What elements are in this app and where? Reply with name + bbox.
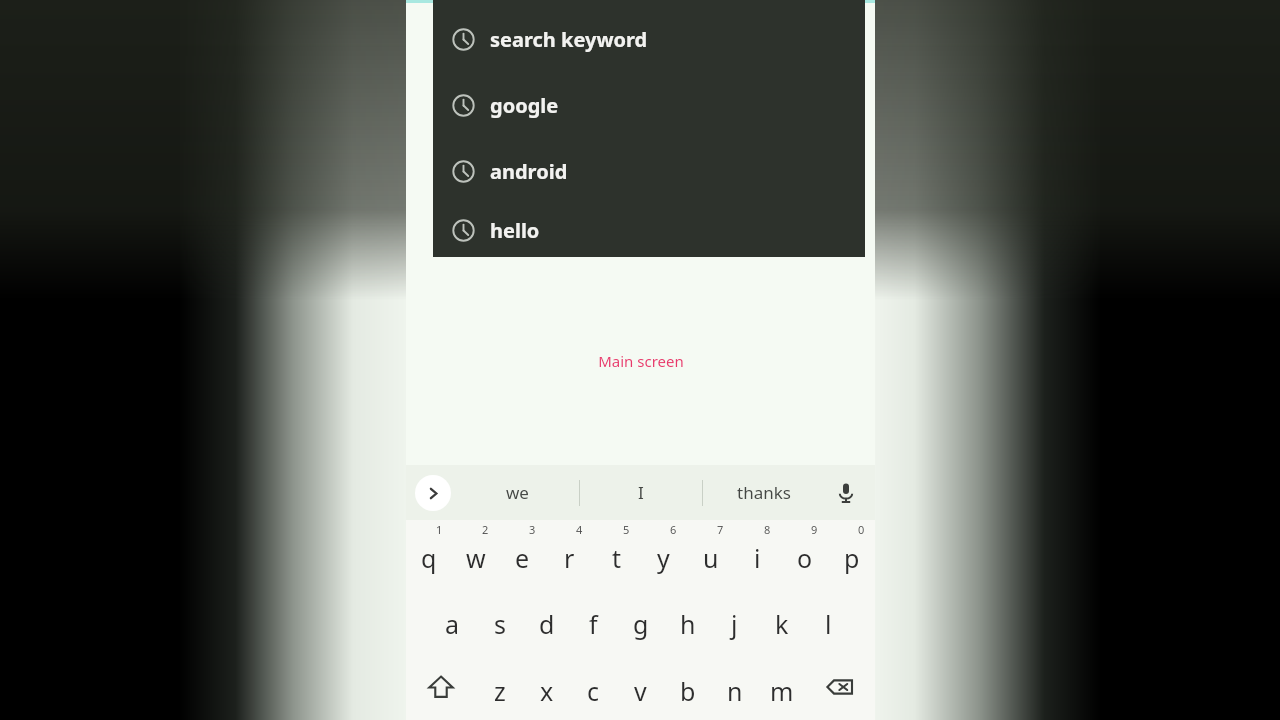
staticText: j [731, 607, 738, 641]
button[interactable]: j [711, 586, 758, 653]
button[interactable]: h [664, 586, 711, 653]
button[interactable]: b [664, 653, 711, 720]
staticText: o [797, 541, 813, 575]
staticText: d [539, 607, 555, 641]
button[interactable]: 8 [734, 520, 781, 586]
button[interactable]: 7 [687, 520, 734, 586]
staticText: t [612, 541, 622, 575]
staticText: we [506, 481, 529, 504]
staticText: n [727, 674, 743, 708]
button[interactable]: search keyword [433, 6, 865, 72]
staticText: android [490, 158, 568, 185]
staticText: u [703, 541, 719, 575]
staticText: google [490, 92, 559, 119]
staticText: Main screen [598, 351, 684, 371]
button[interactable]: hello [433, 204, 865, 257]
staticText: 7 [717, 522, 724, 537]
staticText: s [494, 607, 506, 641]
button[interactable]: l [805, 586, 852, 653]
staticText: w [466, 541, 486, 575]
button[interactable]: 9 [781, 520, 828, 586]
button[interactable]: android [433, 138, 865, 204]
button[interactable]: 5 [593, 520, 640, 586]
staticText: v [634, 674, 647, 708]
staticText: m [770, 674, 794, 708]
staticText: i [754, 541, 761, 575]
staticText: 9 [811, 522, 818, 537]
staticText: q [421, 541, 437, 575]
staticText: l [825, 607, 832, 641]
staticText: y [657, 541, 670, 575]
staticText: c [587, 674, 600, 708]
button[interactable]: Backspace [805, 653, 875, 720]
staticText: 1 [436, 522, 443, 537]
staticText: 4 [576, 522, 583, 537]
button[interactable]: d [523, 586, 570, 653]
staticText: k [775, 607, 789, 641]
staticText: b [680, 674, 696, 708]
button[interactable]: 3 [499, 520, 546, 586]
staticText: 5 [623, 522, 630, 537]
button[interactable]: f [570, 586, 617, 653]
staticText: a [445, 607, 460, 641]
button[interactable]: x [523, 653, 570, 720]
staticText: p [844, 541, 860, 575]
staticText: x [540, 674, 554, 708]
button[interactable]: g [617, 586, 664, 653]
button[interactable]: Shift [406, 653, 476, 720]
staticText: f [589, 607, 598, 641]
button[interactable]: c [570, 653, 617, 720]
staticText: z [494, 674, 506, 708]
button[interactable]: I [580, 465, 702, 520]
staticText: 0 [858, 522, 865, 537]
staticText: 3 [529, 522, 536, 537]
button[interactable]: Expand suggestions [415, 475, 451, 511]
button[interactable]: a [429, 586, 476, 653]
staticText: 6 [670, 522, 677, 537]
button[interactable]: Voice input [829, 476, 863, 510]
staticText: 8 [764, 522, 771, 537]
button[interactable]: 1 [406, 520, 452, 586]
staticText: thanks [737, 481, 791, 504]
staticText: search keyword [490, 26, 648, 53]
staticText: e [515, 541, 530, 575]
staticText: h [680, 607, 696, 641]
staticText: hello [490, 217, 540, 244]
button[interactable]: 4 [546, 520, 593, 586]
button[interactable]: 6 [640, 520, 687, 586]
button[interactable]: 0 [828, 520, 875, 586]
button[interactable]: 2 [452, 520, 499, 586]
button[interactable]: n [711, 653, 758, 720]
staticText: I [638, 481, 644, 504]
button[interactable]: we [456, 465, 579, 520]
staticText: g [633, 607, 649, 641]
button[interactable]: m [758, 653, 805, 720]
button[interactable]: v [617, 653, 664, 720]
staticText: 2 [482, 522, 489, 537]
button[interactable]: thanks [703, 465, 825, 520]
button[interactable]: google [433, 72, 865, 138]
staticText: r [564, 541, 575, 575]
button[interactable]: s [476, 586, 523, 653]
button[interactable]: k [758, 586, 805, 653]
button[interactable]: z [476, 653, 523, 720]
